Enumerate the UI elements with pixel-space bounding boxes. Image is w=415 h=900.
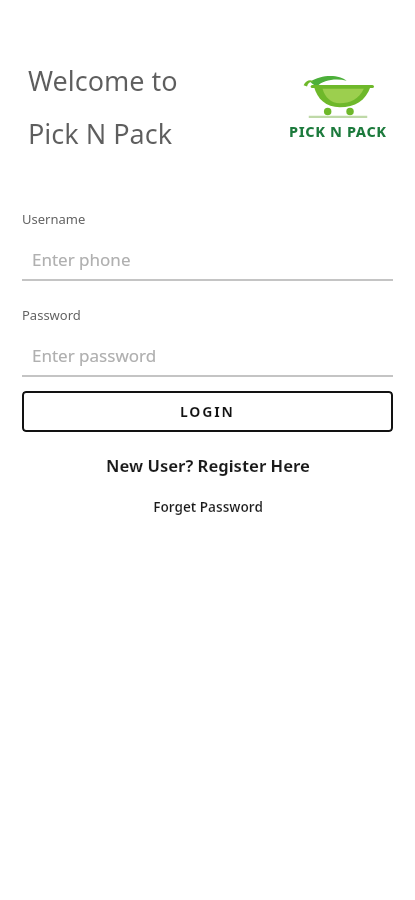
other: Pick N Pack logo	[285, 72, 391, 142]
staticText: New User? Register Here	[106, 454, 310, 476]
staticText: Welcome to	[28, 62, 178, 99]
button[interactable]: Enter phone	[22, 248, 393, 281]
staticText: PICK N PACK	[289, 121, 387, 141]
staticText: LOGIN	[180, 402, 235, 421]
staticText: Enter password	[32, 344, 157, 367]
button[interactable]: Enter password	[22, 344, 393, 377]
button[interactable]: Forget Password	[0, 498, 415, 516]
staticText: Enter phone	[32, 248, 131, 271]
staticText: Pick N Pack	[28, 115, 173, 152]
button[interactable]: LOGIN	[22, 391, 393, 432]
staticText: Password	[22, 306, 81, 324]
staticText: Forget Password	[153, 498, 263, 516]
button[interactable]: New User? Register Here	[0, 454, 415, 476]
staticText: Username	[22, 210, 86, 228]
